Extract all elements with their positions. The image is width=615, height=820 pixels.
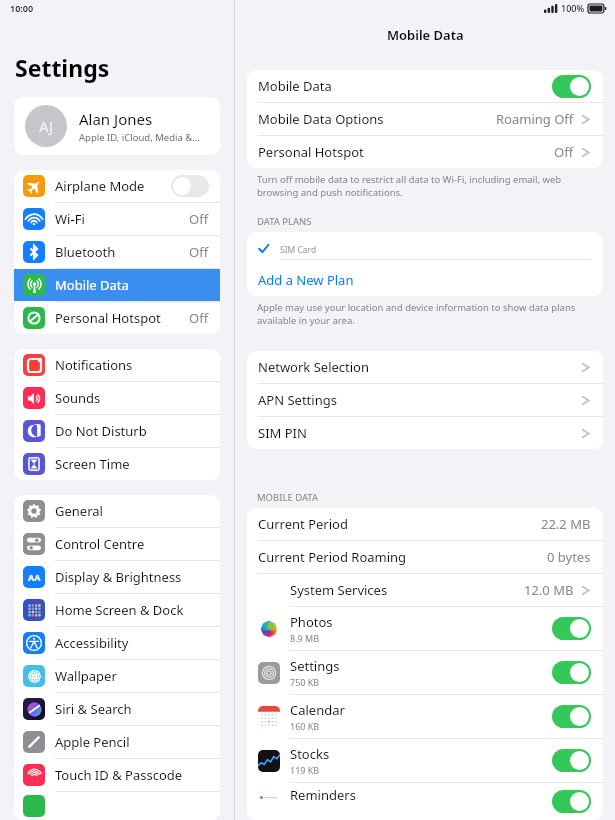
staticText: 0 bytes: [547, 548, 591, 566]
button[interactable]: Mobile Data: [247, 70, 603, 102]
staticText: Current Period: [258, 515, 348, 533]
staticText: Do Not Disturb: [55, 422, 209, 440]
button[interactable]: Screen Time: [14, 448, 220, 480]
button[interactable]: System Services: [247, 574, 603, 606]
button[interactable]: Airplane Mode: [14, 170, 220, 202]
staticText: Calendar: [290, 701, 345, 719]
staticText: Mobile Data Options: [258, 110, 384, 128]
button[interactable]: Photos: [247, 607, 603, 650]
button[interactable]: Personal Hotspot: [247, 136, 603, 168]
staticText: 10:00: [10, 2, 34, 14]
button[interactable]: SIM PIN: [247, 417, 603, 449]
staticText: Notifications: [55, 356, 209, 374]
button[interactable]: Touch ID & Passcode: [14, 759, 220, 791]
button[interactable]: On: [552, 617, 591, 640]
button[interactable]: Personal Hotspot: [14, 302, 220, 334]
button[interactable]: AA: [14, 561, 220, 593]
staticText: Stocks: [290, 745, 330, 763]
staticText: Screen Time: [55, 455, 209, 473]
staticText: Wallpaper: [55, 667, 209, 685]
button[interactable]: Wallpaper: [14, 660, 220, 692]
staticText: 100%: [561, 2, 585, 14]
button[interactable]: Add a New Plan: [247, 264, 603, 296]
staticText: Alan Jones: [79, 109, 153, 129]
staticText: Mobile Data: [258, 77, 332, 95]
button[interactable]: Wi-Fi: [14, 203, 220, 235]
staticText: Sounds: [55, 389, 209, 407]
staticText: SIM Card: [280, 244, 317, 256]
staticText: Home Screen & Dock: [55, 601, 209, 619]
button[interactable]: Mobile Data Options: [247, 103, 603, 135]
staticText: Off: [189, 210, 209, 228]
staticText: Display & Brightness: [55, 568, 209, 586]
button[interactable]: Stocks: [247, 739, 603, 782]
button[interactable]: On: [552, 705, 591, 728]
button[interactable]: APN Settings: [247, 384, 603, 416]
staticText: Mobile Data: [387, 26, 464, 44]
staticText: AJ: [39, 116, 54, 136]
button[interactable]: Mobile Data: [14, 269, 220, 301]
button[interactable]: Calendar: [247, 695, 603, 738]
staticText: Apple may use your location and device i…: [257, 301, 595, 327]
button[interactable]: [14, 792, 220, 820]
staticText: Control Centre: [55, 535, 209, 553]
button[interactable]: Notifications: [14, 349, 220, 381]
button[interactable]: Network Selection: [247, 351, 603, 383]
button[interactable]: Siri & Search: [14, 693, 220, 725]
staticText: MOBILE DATA: [257, 491, 318, 504]
button[interactable]: Home Screen & Dock: [14, 594, 220, 626]
staticText: General: [55, 502, 209, 520]
staticText: System Services: [290, 581, 388, 599]
staticText: Settings: [290, 657, 340, 675]
button[interactable]: Current Period Roaming: [247, 541, 603, 573]
button[interactable]: Apple Pencil: [14, 726, 220, 758]
staticText: Apple ID, iCloud, Media &…: [79, 131, 200, 144]
staticText: Reminders: [290, 786, 356, 804]
staticText: Settings: [15, 52, 110, 83]
button[interactable]: On: [552, 790, 591, 813]
staticText: 160 KB: [290, 720, 320, 732]
staticText: Off: [189, 309, 209, 327]
staticText: Apple Pencil: [55, 733, 209, 751]
button[interactable]: Control Centre: [14, 528, 220, 560]
button[interactable]: Accessibility: [14, 627, 220, 659]
staticText: Turn off mobile data to restrict all dat…: [257, 173, 595, 199]
staticText: Personal Hotspot: [258, 143, 364, 161]
staticText: Airplane Mode: [55, 177, 171, 195]
staticText: Touch ID & Passcode: [55, 766, 209, 784]
button[interactable]: General: [14, 495, 220, 527]
staticText: Add a New Plan: [258, 271, 354, 289]
staticText: Off: [189, 243, 209, 261]
button[interactable]: Reminders: [247, 783, 603, 820]
staticText: 12.0 MB: [524, 581, 574, 599]
staticText: Network Selection: [258, 358, 370, 376]
button[interactable]: On: [552, 75, 591, 98]
staticText: SIM PIN: [258, 424, 307, 442]
button[interactable]: AJ: [14, 97, 220, 155]
staticText: Accessibility: [55, 634, 209, 652]
staticText: 750 KB: [290, 676, 320, 688]
staticText: Off: [554, 143, 574, 161]
button[interactable]: On: [552, 661, 591, 684]
button[interactable]: Bluetooth: [14, 236, 220, 268]
staticText: 8.9 MB: [290, 632, 320, 644]
staticText: 119 KB: [290, 764, 320, 776]
staticText: Bluetooth: [55, 243, 189, 261]
staticText: Siri & Search: [55, 700, 209, 718]
button[interactable]: Off: [171, 175, 209, 197]
staticText: Photos: [290, 613, 333, 631]
button[interactable]: SIM Card: [247, 232, 603, 264]
staticText: Mobile Data: [55, 276, 209, 294]
button[interactable]: Current Period: [247, 508, 603, 540]
button[interactable]: On: [552, 749, 591, 772]
staticText: AA: [28, 571, 41, 583]
button[interactable]: Do Not Disturb: [14, 415, 220, 447]
staticText: Roaming Off: [496, 110, 574, 128]
staticText: Current Period Roaming: [258, 548, 407, 566]
staticText: DATA PLANS: [257, 215, 312, 228]
staticText: 22.2 MB: [541, 515, 591, 533]
staticText: APN Settings: [258, 391, 337, 409]
button[interactable]: Sounds: [14, 382, 220, 414]
button[interactable]: Settings: [247, 651, 603, 694]
